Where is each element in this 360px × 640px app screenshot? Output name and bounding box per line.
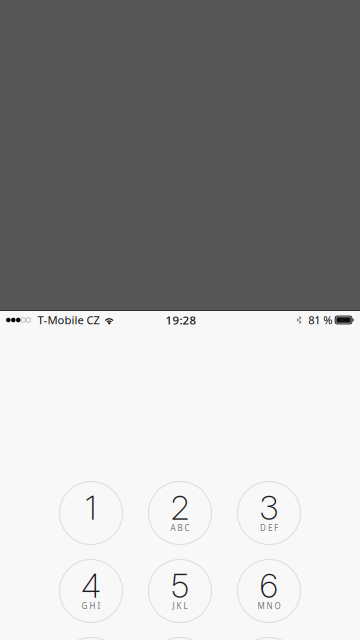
button[interactable]: 8	[148, 637, 211, 640]
button[interactable]: 3	[237, 481, 300, 544]
staticText: T-Mobile CZ	[37, 312, 99, 328]
button[interactable]: 2	[148, 481, 211, 544]
staticText: G	[82, 601, 88, 611]
staticText: C	[184, 523, 189, 533]
staticText: N	[266, 601, 272, 611]
staticText: D	[260, 523, 266, 533]
button[interactable]: 6	[237, 559, 300, 622]
staticText: B	[177, 523, 182, 533]
staticText: J	[173, 601, 175, 611]
button[interactable]: 4	[59, 559, 122, 622]
staticText: 1	[85, 487, 97, 528]
staticText: L	[183, 601, 187, 611]
staticText: 19:28	[165, 312, 196, 328]
button[interactable]: 5	[148, 559, 211, 622]
staticText: H	[89, 601, 95, 611]
staticText: I	[97, 601, 100, 611]
button[interactable]: 9	[237, 637, 300, 640]
staticText: O	[274, 601, 280, 611]
staticText: M	[258, 601, 265, 611]
staticText: 6	[259, 565, 278, 606]
staticText: E	[268, 523, 272, 533]
staticText: F	[274, 523, 278, 533]
staticText: A	[171, 523, 176, 533]
staticText: K	[176, 601, 181, 611]
staticText: 4	[81, 565, 101, 606]
button[interactable]: 7	[59, 637, 122, 640]
staticText: 5	[171, 565, 189, 606]
staticText: 2	[170, 487, 189, 528]
staticText: 3	[259, 487, 278, 528]
button[interactable]: 1	[59, 481, 122, 544]
staticText: 81 %	[308, 312, 332, 328]
